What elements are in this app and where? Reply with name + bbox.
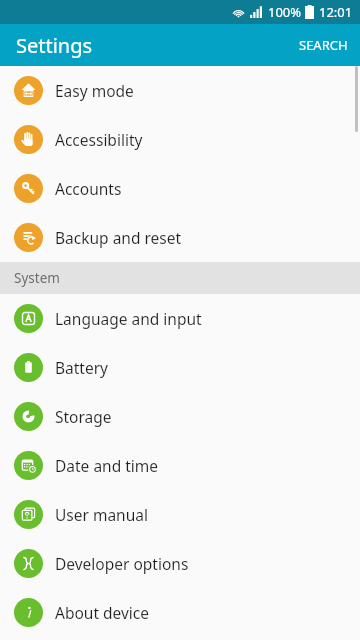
button[interactable]: SEARCH <box>287 28 360 62</box>
staticText: Accounts <box>55 178 122 199</box>
staticText: Date and time <box>55 455 159 476</box>
button[interactable]: Accounts <box>0 164 360 213</box>
button[interactable]: Settings <box>0 28 101 63</box>
button[interactable]: User manual <box>0 490 360 539</box>
button[interactable]: Storage <box>0 392 360 441</box>
staticText: SEARCH <box>299 36 348 54</box>
button[interactable]: Backup and reset <box>0 213 360 262</box>
staticText: System <box>14 269 60 287</box>
staticText: Developer options <box>55 553 189 574</box>
button[interactable]: Language and input <box>0 294 360 343</box>
staticText: Easy mode <box>55 80 134 101</box>
button[interactable]: Easy mode <box>0 66 360 115</box>
button[interactable]: Accessibility <box>0 115 360 164</box>
staticText: Language and input <box>55 308 202 329</box>
staticText: 12:01 <box>319 3 353 21</box>
staticText: About device <box>55 602 150 623</box>
staticText: 100% <box>268 3 302 21</box>
button[interactable]: Developer options <box>0 539 360 588</box>
staticText: Battery <box>55 357 109 378</box>
staticText: User manual <box>55 504 148 525</box>
button[interactable]: Date and time <box>0 441 360 490</box>
staticText: Settings <box>16 32 93 59</box>
button[interactable]: About device <box>0 588 360 637</box>
button[interactable]: Battery <box>0 343 360 392</box>
staticText: Accessibility <box>55 129 143 150</box>
staticText: Backup and reset <box>55 227 182 248</box>
staticText: Storage <box>55 406 112 427</box>
